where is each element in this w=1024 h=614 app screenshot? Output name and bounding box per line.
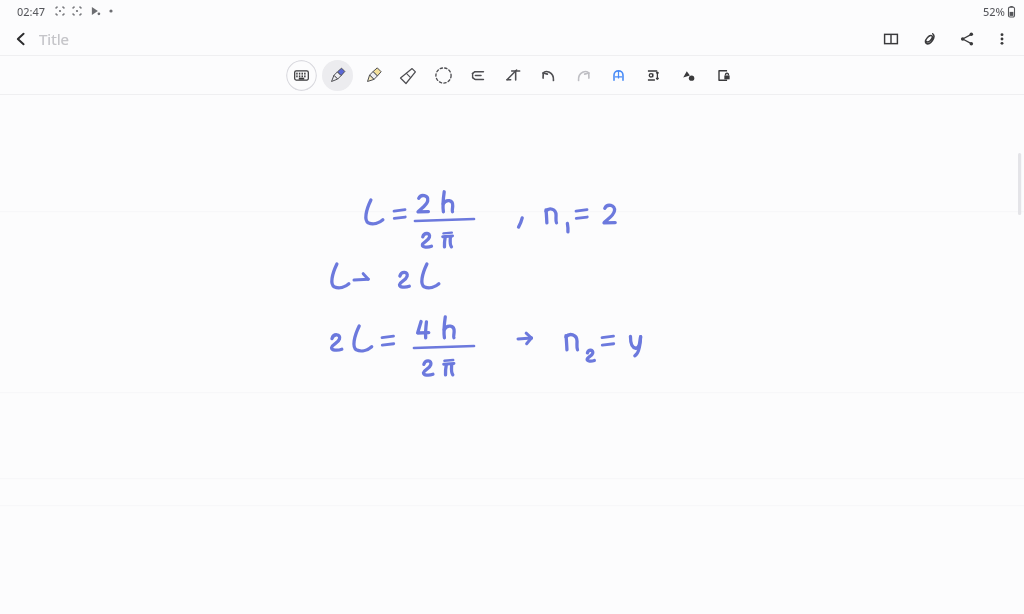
button[interactable]: Eraser xyxy=(393,60,424,91)
button[interactable]: Paragraph alignment xyxy=(463,60,494,91)
button[interactable]: Ink colour xyxy=(673,60,704,91)
button[interactable]: Selection xyxy=(428,60,459,91)
staticText: 52% xyxy=(983,4,1005,19)
button[interactable]: Undo xyxy=(533,60,564,91)
button[interactable]: Highlighter xyxy=(358,60,389,91)
button[interactable]: More options xyxy=(987,24,1017,54)
button[interactable]: Convert handwriting to text xyxy=(498,60,529,91)
button[interactable]: Pen xyxy=(322,60,353,91)
button[interactable]: Back xyxy=(6,24,36,54)
button[interactable]: Share xyxy=(951,23,983,55)
button[interactable]: Auto shape xyxy=(603,60,634,91)
staticText: Title xyxy=(39,29,69,49)
button[interactable]: Attach file xyxy=(913,23,945,55)
button[interactable]: Reading view xyxy=(875,23,907,55)
button[interactable]: Redo xyxy=(568,60,599,91)
button[interactable]: Text size xyxy=(638,60,669,91)
button[interactable]: Keyboard xyxy=(286,60,317,91)
button[interactable]: Lock page xyxy=(708,60,739,91)
staticText: 02:47 xyxy=(17,4,46,19)
